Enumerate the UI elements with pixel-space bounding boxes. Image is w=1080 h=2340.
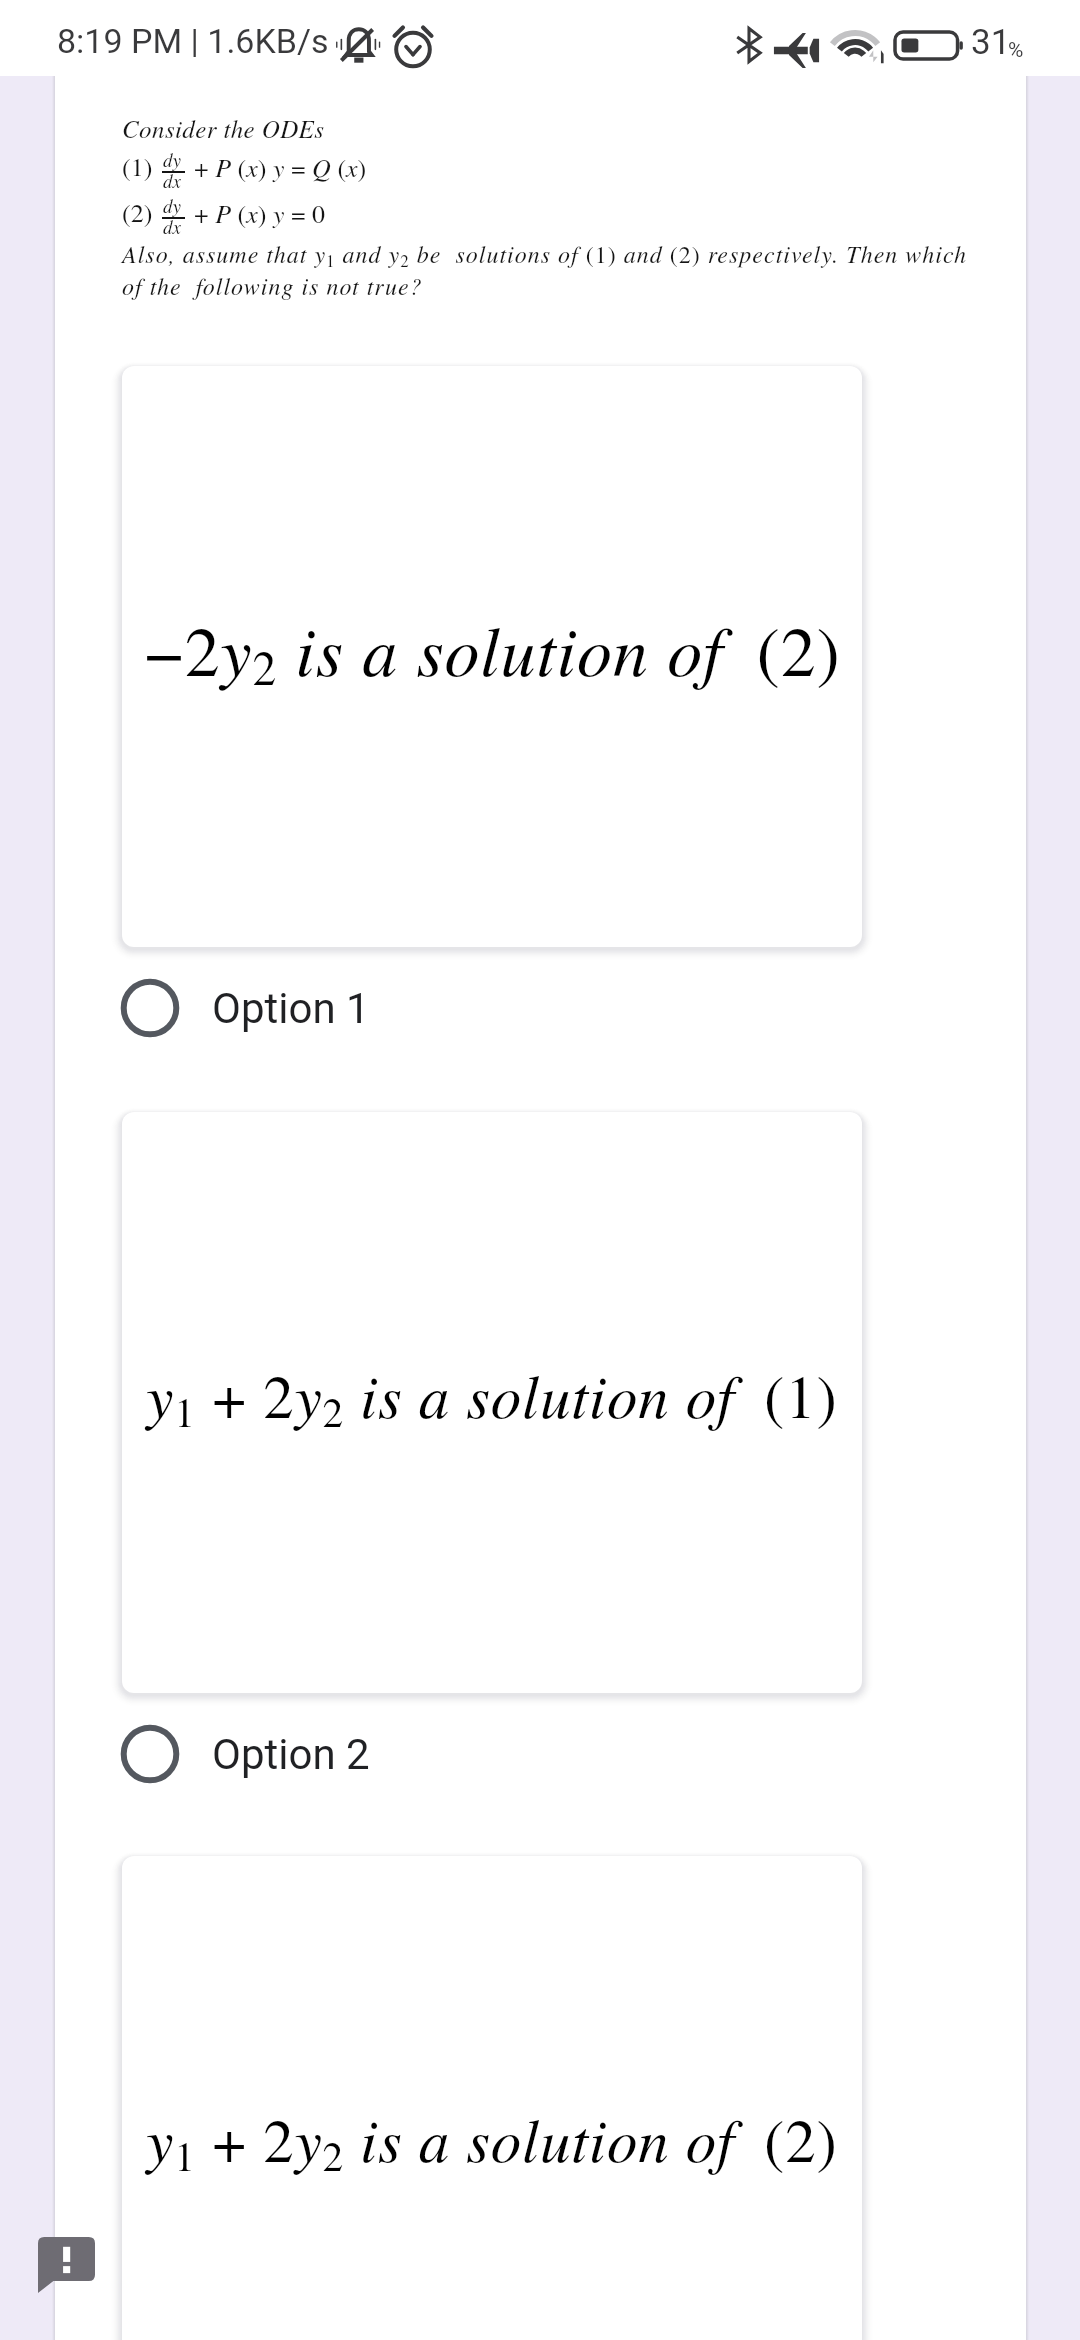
button[interactable]: y1 + 2y2 is a solution of (2) bbox=[122, 1856, 862, 2340]
staticText: of the following is not true? bbox=[122, 269, 423, 301]
staticText: (1) bbox=[122, 149, 153, 184]
staticText: dx bbox=[163, 214, 181, 239]
staticText: (2) bbox=[122, 195, 153, 230]
button[interactable]: Report a problem with this question bbox=[38, 2237, 95, 2293]
staticText: + P (x) y = 0 bbox=[194, 195, 326, 230]
staticText: dy bbox=[163, 147, 181, 172]
staticText: Consider the ODEs bbox=[122, 111, 325, 145]
staticText: 8:19 PM | 1.6KB/s bbox=[57, 21, 329, 61]
button[interactable]: Option 2 bbox=[108, 1706, 628, 1802]
staticText: y1 + 2y2 is a solution of (2) bbox=[146, 2097, 838, 2182]
staticText: Option 1 bbox=[212, 984, 370, 1033]
button[interactable]: Option 1 bbox=[108, 960, 628, 1056]
button[interactable]: −2y2 is a solution of (2) bbox=[122, 366, 862, 947]
staticText: −2y2 is a solution of (2) bbox=[144, 601, 841, 699]
staticText: dx bbox=[163, 168, 181, 193]
staticText: 31 bbox=[971, 22, 1011, 63]
staticText: Option 2 bbox=[212, 1730, 370, 1779]
staticText: y1 + 2y2 is a solution of (1) bbox=[146, 1353, 838, 1438]
staticText: + P (x) y = Q (x) bbox=[194, 149, 367, 184]
staticText: Also, assume that y1 and y2 be solutions… bbox=[122, 237, 967, 272]
staticText: % bbox=[1008, 38, 1024, 63]
button[interactable]: y1 + 2y2 is a solution of (1) bbox=[122, 1112, 862, 1693]
staticText: dy bbox=[163, 193, 181, 218]
